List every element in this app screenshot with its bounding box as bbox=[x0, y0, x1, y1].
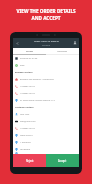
staticText: Business details bbox=[15, 71, 33, 74]
button[interactable]: Messages bbox=[46, 48, 79, 54]
button[interactable]: 2020-06-07 01:00 bbox=[15, 55, 77, 62]
button[interactable]: Tom Hart bbox=[15, 111, 77, 118]
button[interactable]: +79000123123 bbox=[15, 83, 77, 90]
staticText: Details bbox=[26, 50, 34, 53]
staticText: 2020-06-07 01:00 bbox=[20, 57, 38, 60]
staticText: 1 entrance bbox=[20, 141, 31, 144]
staticText: Landmark bbox=[20, 148, 31, 151]
button[interactable]: Details bbox=[13, 48, 46, 54]
staticText: VIEW THE ORDER DETAILS bbox=[0, 8, 92, 14]
button[interactable]: Comment bbox=[15, 153, 77, 154]
staticText: Main street 1 bbox=[20, 134, 34, 137]
button[interactable]: Accept bbox=[46, 154, 79, 167]
staticText: +79000123123 bbox=[20, 85, 35, 88]
button[interactable]: Back bbox=[13, 38, 21, 48]
staticText: Messages bbox=[57, 50, 68, 53]
staticText: Order 1904116 #00042 bbox=[34, 40, 59, 43]
staticText: mail@mail.com bbox=[20, 120, 36, 123]
button[interactable]: Main street 1 bbox=[15, 132, 77, 139]
staticText: Reject bbox=[26, 159, 34, 163]
staticText: Pending bbox=[42, 44, 51, 47]
staticText: Accept bbox=[58, 159, 67, 163]
button[interactable]: +79000123123 bbox=[15, 90, 77, 97]
button[interactable]: Account bbox=[71, 38, 79, 48]
button[interactable]: 1 entrance bbox=[15, 139, 77, 146]
staticText: AND ACCEPT bbox=[0, 15, 92, 21]
button[interactable]: Reject bbox=[13, 154, 46, 167]
staticText: +79000123123 bbox=[20, 127, 35, 130]
staticText: St. Petersburg Nevsky avenue 41 a bbox=[20, 99, 55, 102]
button[interactable]: St. Petersburg Nevsky avenue 41 a bbox=[15, 97, 77, 104]
button[interactable]: mail@mail.com bbox=[15, 118, 77, 125]
staticText: Paid bbox=[20, 64, 25, 67]
button[interactable]: Paid bbox=[15, 62, 77, 69]
staticText: +79000123123 bbox=[20, 92, 35, 95]
button[interactable]: Burgers and pizzeria - contactless bbox=[15, 76, 77, 83]
staticText: Customer details bbox=[15, 106, 34, 109]
staticText: Tom Hart bbox=[20, 113, 30, 116]
button[interactable]: Landmark bbox=[15, 146, 77, 153]
button[interactable]: +79000123123 bbox=[15, 125, 77, 132]
staticText: Burgers and pizzeria - contactless bbox=[20, 78, 54, 81]
